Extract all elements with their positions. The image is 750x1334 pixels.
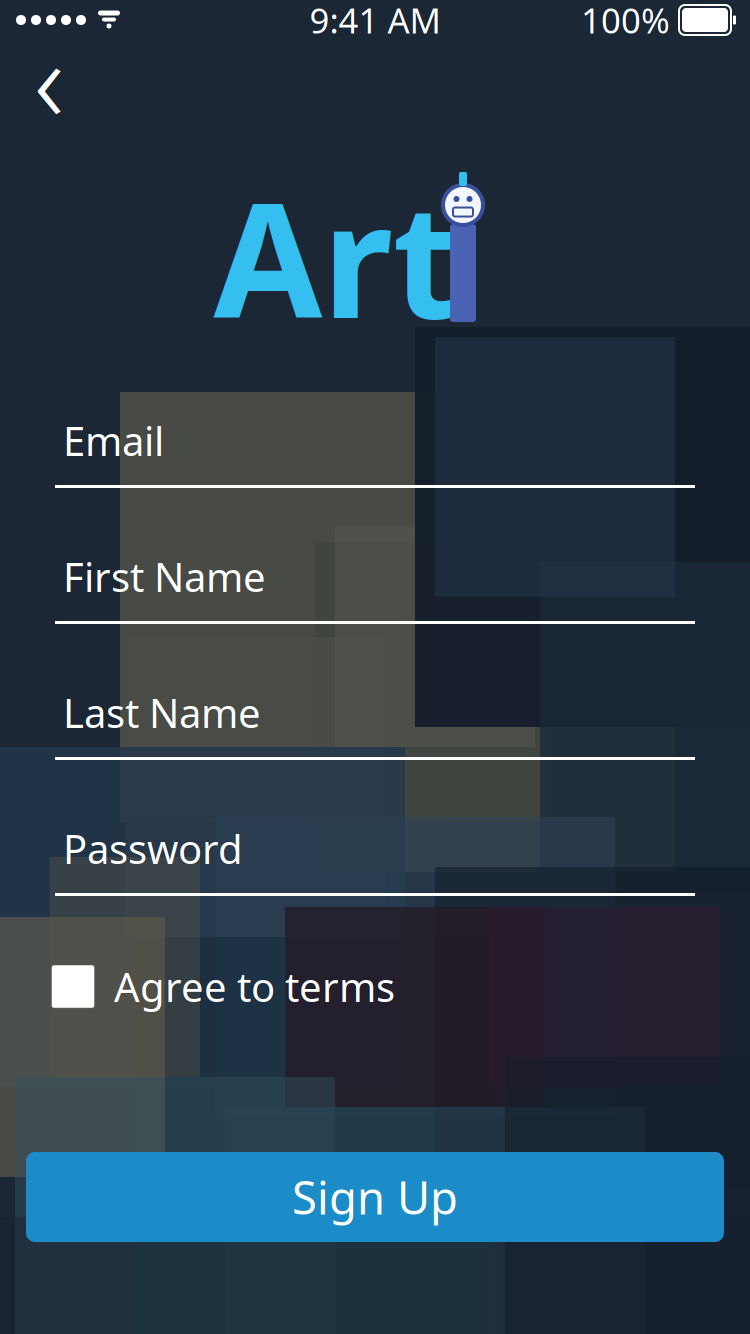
button[interactable]: Back [12, 41, 86, 115]
staticText: First Name [63, 550, 266, 603]
button[interactable]: Sign Up [26, 1152, 724, 1242]
button[interactable]: Email [55, 402, 695, 488]
staticText: ‹ [34, 2, 64, 154]
staticText: Password [63, 822, 243, 875]
staticText: Sign Up [292, 1167, 458, 1227]
button[interactable]: Agree to terms [52, 952, 395, 1021]
staticText: Email [63, 414, 164, 467]
staticText: Art [213, 152, 460, 361]
button[interactable]: Last Name [55, 674, 695, 760]
staticText: Agree to terms [114, 960, 395, 1013]
staticText: 100% [581, 0, 670, 43]
staticText: Last Name [63, 686, 261, 739]
button[interactable]: First Name [55, 538, 695, 624]
button[interactable]: Password [55, 810, 695, 896]
staticText: 9:41 AM [309, 0, 440, 43]
